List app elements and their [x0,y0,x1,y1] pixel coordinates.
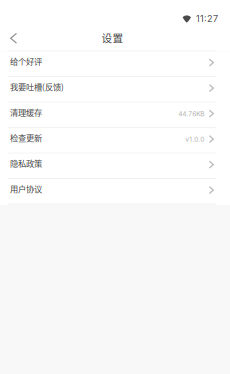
staticText: 11:27 [196,13,218,24]
button[interactable]: 我要吐槽(反馈) [0,77,230,103]
button[interactable]: 用户协议 [0,179,230,205]
button[interactable]: 检查更新 [0,128,230,154]
staticText: 给个好评 [10,55,42,67]
staticText: 设置 [101,30,123,45]
button[interactable]: Back [0,28,26,49]
staticText: 44.76KB [178,110,204,118]
staticText: 用户协议 [10,183,42,195]
staticText: 我要吐槽(反馈) [10,81,64,93]
staticText: 隐私政策 [10,157,42,169]
staticText: 检查更新 [10,132,42,144]
button[interactable]: 隐私政策 [0,154,230,179]
button[interactable]: 清理缓存 [0,103,230,128]
button[interactable]: 给个好评 [0,52,230,77]
staticText: v1.0.0 [185,135,204,143]
staticText: 清理缓存 [10,106,42,118]
